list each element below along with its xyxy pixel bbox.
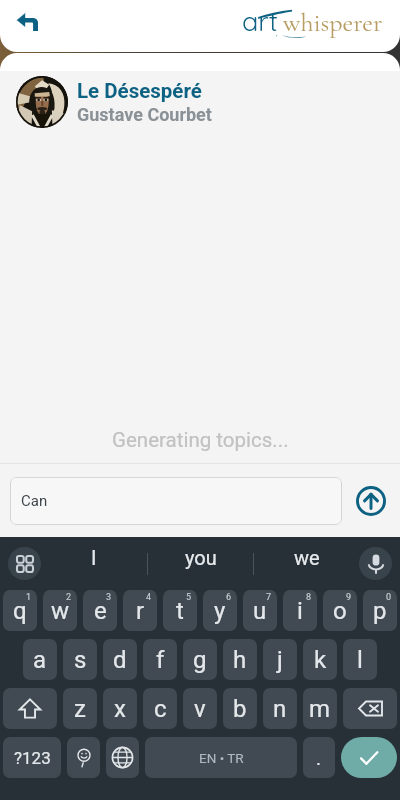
staticText: l [357, 646, 363, 674]
button[interactable]: we [254, 537, 359, 590]
staticText: a [33, 646, 47, 674]
button[interactable]: k [303, 639, 337, 680]
staticText: m [309, 695, 331, 723]
button[interactable]: v [183, 688, 217, 729]
button[interactable]: r [123, 590, 157, 631]
staticText: 6 [226, 592, 232, 603]
button[interactable]: q [3, 590, 37, 631]
button[interactable]: Enter [341, 737, 397, 778]
button[interactable]: Back [5, 0, 49, 44]
staticText: v [194, 695, 206, 723]
button[interactable]: y [203, 590, 237, 631]
button[interactable]: a [23, 639, 57, 680]
staticText: 1 [26, 592, 32, 603]
staticText: r [136, 597, 145, 625]
button[interactable]: b [223, 688, 257, 729]
button[interactable]: h [223, 639, 257, 680]
staticText: e [94, 597, 107, 625]
button[interactable]: ?123 [3, 737, 61, 778]
staticText: Gustave Courbet [77, 104, 212, 125]
staticText: you [185, 546, 217, 569]
staticText: 2 [66, 592, 72, 603]
button[interactable]: c [143, 688, 177, 729]
button[interactable]: Can [10, 477, 342, 525]
button[interactable]: u [243, 590, 277, 631]
staticText: g [193, 646, 207, 674]
staticText: w [51, 597, 70, 625]
button[interactable]: z [63, 688, 97, 729]
button[interactable]: m [303, 688, 337, 729]
staticText: p [373, 597, 387, 625]
staticText: Generating topics... [112, 428, 289, 452]
button[interactable]: g [183, 639, 217, 680]
button[interactable]: w [43, 590, 77, 631]
staticText: 5 [186, 592, 192, 603]
staticText: b [233, 695, 247, 723]
staticText: y [214, 597, 226, 625]
staticText: t [176, 597, 184, 625]
staticText: Le Désespéré [77, 79, 202, 103]
staticText: Can [21, 492, 48, 510]
staticText: k [314, 646, 327, 674]
button[interactable]: I [41, 537, 147, 590]
button[interactable]: o [323, 590, 357, 631]
button[interactable]: i [283, 590, 317, 631]
button[interactable]: l [343, 639, 377, 680]
button[interactable]: Shift [3, 688, 57, 729]
staticText: h [233, 646, 247, 674]
staticText: ?123 [14, 748, 51, 768]
button[interactable]: x [103, 688, 137, 729]
button[interactable]: n [263, 688, 297, 729]
staticText: i [297, 597, 303, 625]
button[interactable]: e [83, 590, 117, 631]
button[interactable]: Toolbar [8, 547, 41, 580]
staticText: c [154, 695, 167, 723]
staticText: z [74, 695, 86, 723]
staticText: 9 [346, 592, 352, 603]
staticText: 7 [266, 592, 272, 603]
staticText: whisperer [283, 7, 383, 38]
staticText: 3 [106, 592, 112, 603]
button[interactable]: s [63, 639, 97, 680]
staticText: 0 [386, 592, 392, 603]
button[interactable]: Emoji [67, 737, 100, 778]
staticText: d [113, 646, 127, 674]
staticText: f [156, 646, 165, 674]
staticText: u [253, 597, 267, 625]
button[interactable]: Voice input [359, 547, 392, 580]
staticText: s [74, 646, 87, 674]
staticText: . [316, 747, 322, 769]
button[interactable]: Backspace [343, 688, 397, 729]
button[interactable]: Send [353, 483, 389, 519]
staticText: n [273, 695, 287, 723]
button[interactable]: . [303, 737, 335, 778]
staticText: 8 [306, 592, 312, 603]
button[interactable]: t [163, 590, 197, 631]
staticText: EN • TR [199, 750, 244, 766]
button[interactable]: Language [106, 737, 139, 778]
button[interactable]: p [363, 590, 397, 631]
staticText: j [277, 646, 283, 674]
staticText: q [13, 597, 27, 625]
staticText: we [294, 546, 320, 569]
button[interactable]: f [143, 639, 177, 680]
staticText: 4 [146, 592, 152, 603]
button[interactable]: you [148, 537, 253, 590]
button[interactable]: j [263, 639, 297, 680]
staticText: o [333, 597, 347, 625]
button[interactable]: d [103, 639, 137, 680]
staticText: x [114, 695, 126, 723]
staticText: I [91, 546, 97, 569]
button[interactable]: EN • TR [145, 737, 297, 778]
staticText: art [242, 4, 278, 38]
